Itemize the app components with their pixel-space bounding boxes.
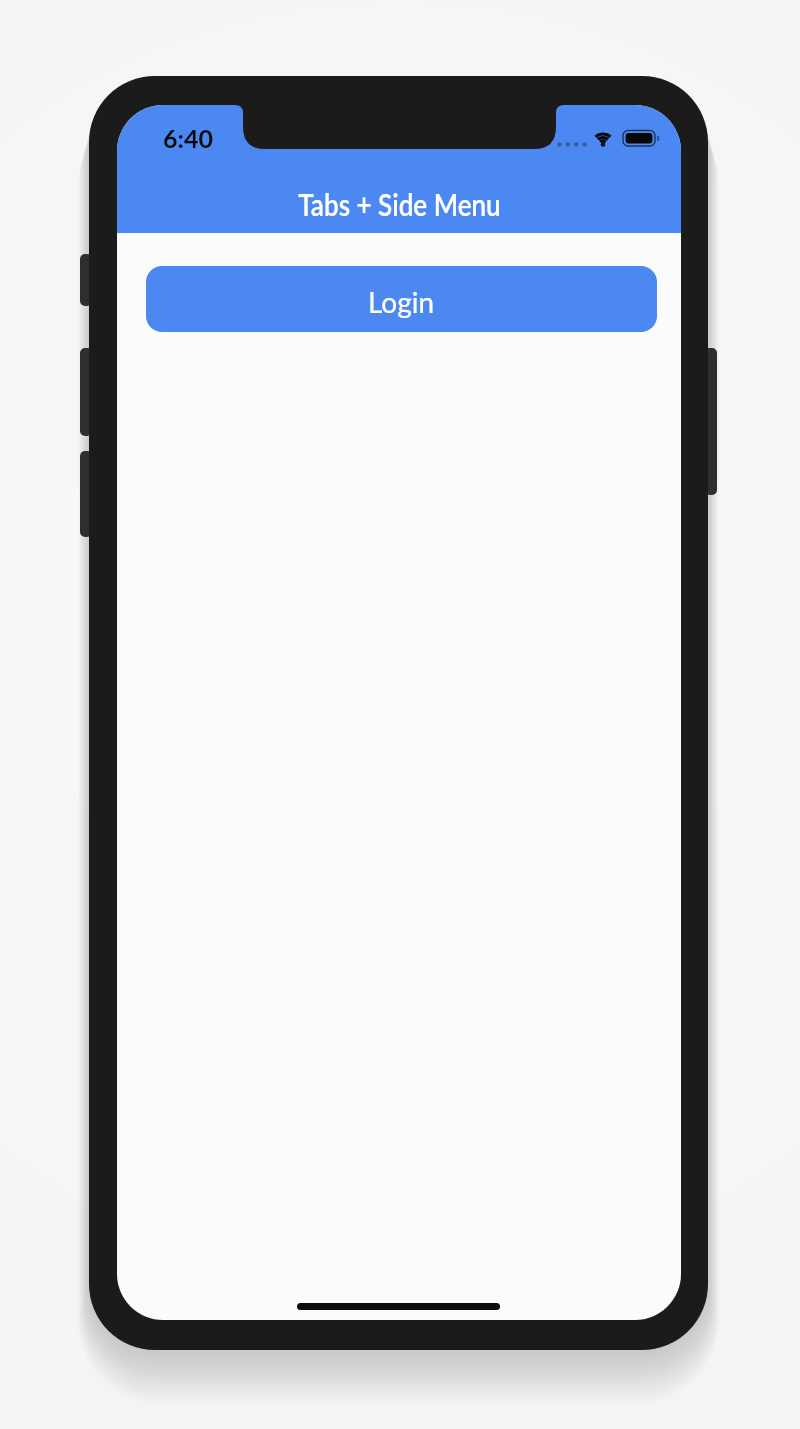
button[interactable]: Login (146, 266, 657, 332)
staticText: 6:40 (163, 123, 213, 153)
staticText: Tabs + Side Menu (298, 185, 501, 222)
staticText: Login (368, 285, 435, 319)
